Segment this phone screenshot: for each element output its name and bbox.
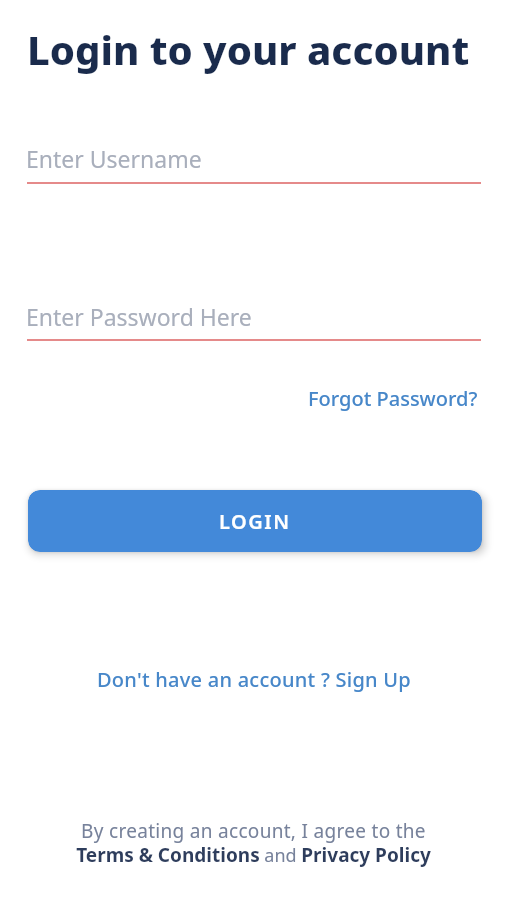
staticText: LOGIN: [219, 508, 291, 535]
button[interactable]: Don't have an account ? Sign Up: [97, 666, 411, 693]
staticText: Login to your account: [27, 22, 470, 76]
staticText: By creating an account, I agree to the: [0, 818, 507, 844]
button[interactable]: Forgot Password?: [308, 385, 478, 412]
button[interactable]: LOGIN: [28, 490, 482, 552]
staticText: Enter Password Here: [26, 301, 252, 332]
button[interactable]: Terms & Conditions and Privacy Policy: [0, 842, 507, 868]
staticText: Enter Username: [26, 143, 202, 174]
